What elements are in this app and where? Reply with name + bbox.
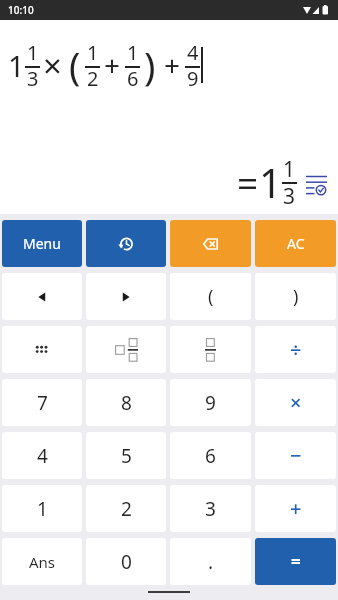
button[interactable]: ÷ — [255, 326, 336, 373]
staticText: Ans — [29, 552, 56, 572]
button[interactable] — [170, 220, 251, 267]
staticText: ) — [144, 39, 156, 91]
button[interactable]: − — [255, 432, 336, 479]
staticText: ( — [69, 39, 81, 91]
staticText: 9 — [205, 390, 216, 416]
staticText: ÷ — [290, 336, 302, 363]
staticText: 3 — [27, 65, 39, 92]
button[interactable]: . — [170, 538, 251, 585]
button[interactable]: 3 — [170, 485, 251, 532]
button[interactable]: AC — [255, 220, 336, 267]
staticText: 1 — [37, 496, 48, 522]
staticText: 1 — [27, 39, 39, 66]
button[interactable]: 9 — [170, 379, 251, 426]
button[interactable]: 8 — [86, 379, 166, 426]
button[interactable]: ( — [170, 273, 251, 320]
staticText: 4 — [187, 39, 199, 66]
staticText: ( — [208, 284, 214, 309]
staticText: 1 — [127, 39, 139, 66]
staticText: = — [291, 550, 301, 573]
staticText: + — [164, 46, 181, 84]
button[interactable]: 0 — [86, 538, 166, 585]
staticText: 3 — [283, 182, 296, 211]
staticText: 10:10 — [8, 3, 34, 17]
button[interactable]: × — [255, 379, 336, 426]
staticText: 4 — [37, 443, 48, 469]
staticText: 1 — [8, 46, 25, 85]
staticText: 2 — [121, 496, 132, 522]
staticText: AC — [287, 234, 305, 253]
button[interactable]: = — [255, 538, 336, 585]
button[interactable] — [2, 273, 82, 320]
staticText: 6 — [205, 443, 216, 469]
button[interactable]: Menu — [2, 220, 82, 267]
staticText: + — [290, 495, 302, 522]
button[interactable]: 6 — [170, 432, 251, 479]
staticText: 9 — [187, 65, 199, 92]
staticText: = — [237, 157, 259, 207]
button[interactable] — [2, 326, 82, 373]
staticText: + — [104, 46, 121, 84]
staticText: . — [208, 549, 214, 575]
staticText: 1 — [259, 155, 282, 209]
button[interactable] — [86, 220, 166, 267]
staticText: 1 — [283, 155, 296, 184]
button[interactable]: 7 — [2, 379, 82, 426]
staticText: 7 — [37, 390, 48, 416]
staticText: 6 — [127, 65, 139, 92]
button[interactable]: + — [255, 485, 336, 532]
staticText: 2 — [87, 65, 99, 92]
button[interactable]: 1 — [2, 485, 82, 532]
staticText: Menu — [23, 234, 61, 253]
button[interactable]: Ans — [2, 538, 82, 585]
button[interactable]: ) — [255, 273, 336, 320]
staticText: × — [43, 43, 62, 88]
staticText: 5 — [121, 443, 132, 469]
staticText: × — [290, 389, 302, 416]
button[interactable] — [170, 326, 251, 373]
button[interactable] — [86, 273, 166, 320]
staticText: ) — [293, 284, 299, 309]
staticText: 1 — [87, 39, 99, 66]
staticText: 0 — [121, 549, 132, 575]
button[interactable]: 5 — [86, 432, 166, 479]
button[interactable]: 4 — [2, 432, 82, 479]
button[interactable] — [305, 172, 329, 198]
button[interactable] — [86, 326, 166, 373]
staticText: 8 — [121, 390, 132, 416]
button[interactable]: 2 — [86, 485, 166, 532]
staticText: 3 — [205, 496, 216, 522]
staticText: − — [290, 442, 302, 469]
